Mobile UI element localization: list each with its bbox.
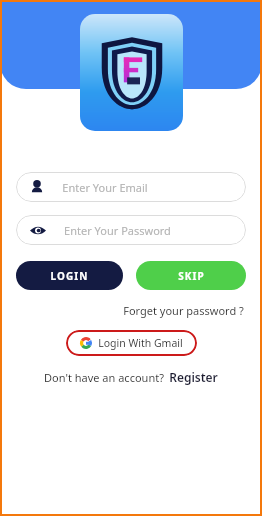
staticText: LOGIN — [50, 269, 89, 283]
button[interactable]: Google — [66, 330, 197, 356]
button[interactable]: Show password — [16, 215, 246, 245]
button[interactable]: LOGIN — [16, 261, 123, 290]
other: Google — [80, 337, 92, 349]
button[interactable]: User — [16, 172, 246, 202]
staticText: Don't have an account? — [44, 370, 164, 385]
staticText: Register — [169, 369, 218, 385]
staticText: Forget your password ? — [123, 303, 244, 318]
button[interactable]: Forget your password ? — [121, 301, 246, 320]
staticText: Enter Your Email — [62, 180, 148, 195]
button[interactable]: SKIP — [136, 261, 246, 290]
other: User — [30, 180, 44, 194]
other: Show password — [30, 225, 46, 236]
staticText: Login With Gmail — [98, 336, 183, 350]
staticText: Enter Your Password — [64, 223, 171, 238]
staticText: SKIP — [178, 269, 205, 283]
button[interactable]: Register — [169, 369, 218, 385]
